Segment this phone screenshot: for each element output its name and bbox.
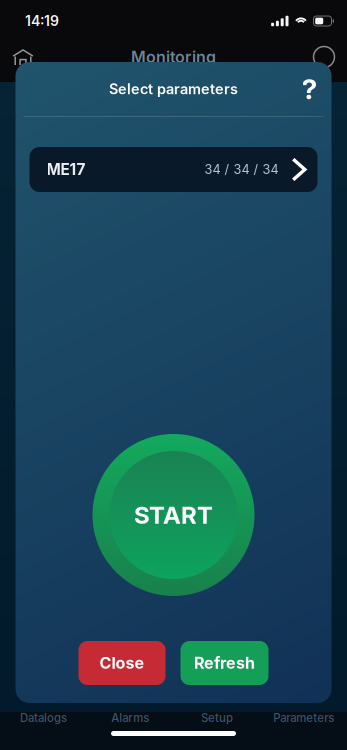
button[interactable]: Datalogs	[0, 705, 87, 731]
staticText: ?	[301, 72, 317, 106]
button[interactable]: Close	[78, 641, 165, 685]
button[interactable]: Alarms	[87, 705, 174, 731]
staticText: Refresh	[194, 653, 255, 673]
staticText: 34 / 34 / 34	[204, 162, 278, 177]
staticText: Setup	[201, 711, 233, 725]
staticText: 14:19	[25, 12, 59, 29]
button[interactable]: Parameters	[260, 705, 347, 731]
staticText: Monitoring	[131, 47, 216, 67]
button[interactable]: Setup	[173, 705, 260, 731]
button[interactable]: Home	[7, 43, 39, 71]
button[interactable]: START	[92, 434, 254, 596]
button[interactable]: ME17	[29, 147, 317, 192]
staticText: Close	[99, 653, 144, 673]
button[interactable]: Help	[308, 43, 340, 71]
staticText: ME17	[46, 160, 85, 179]
staticText: Parameters	[273, 711, 334, 725]
button[interactable]: Refresh	[180, 641, 268, 685]
staticText: Alarms	[111, 711, 149, 725]
button[interactable]: Help	[292, 69, 326, 109]
staticText: Select parameters	[109, 80, 238, 98]
staticText: Datalogs	[20, 711, 67, 725]
staticText: START	[134, 500, 213, 529]
